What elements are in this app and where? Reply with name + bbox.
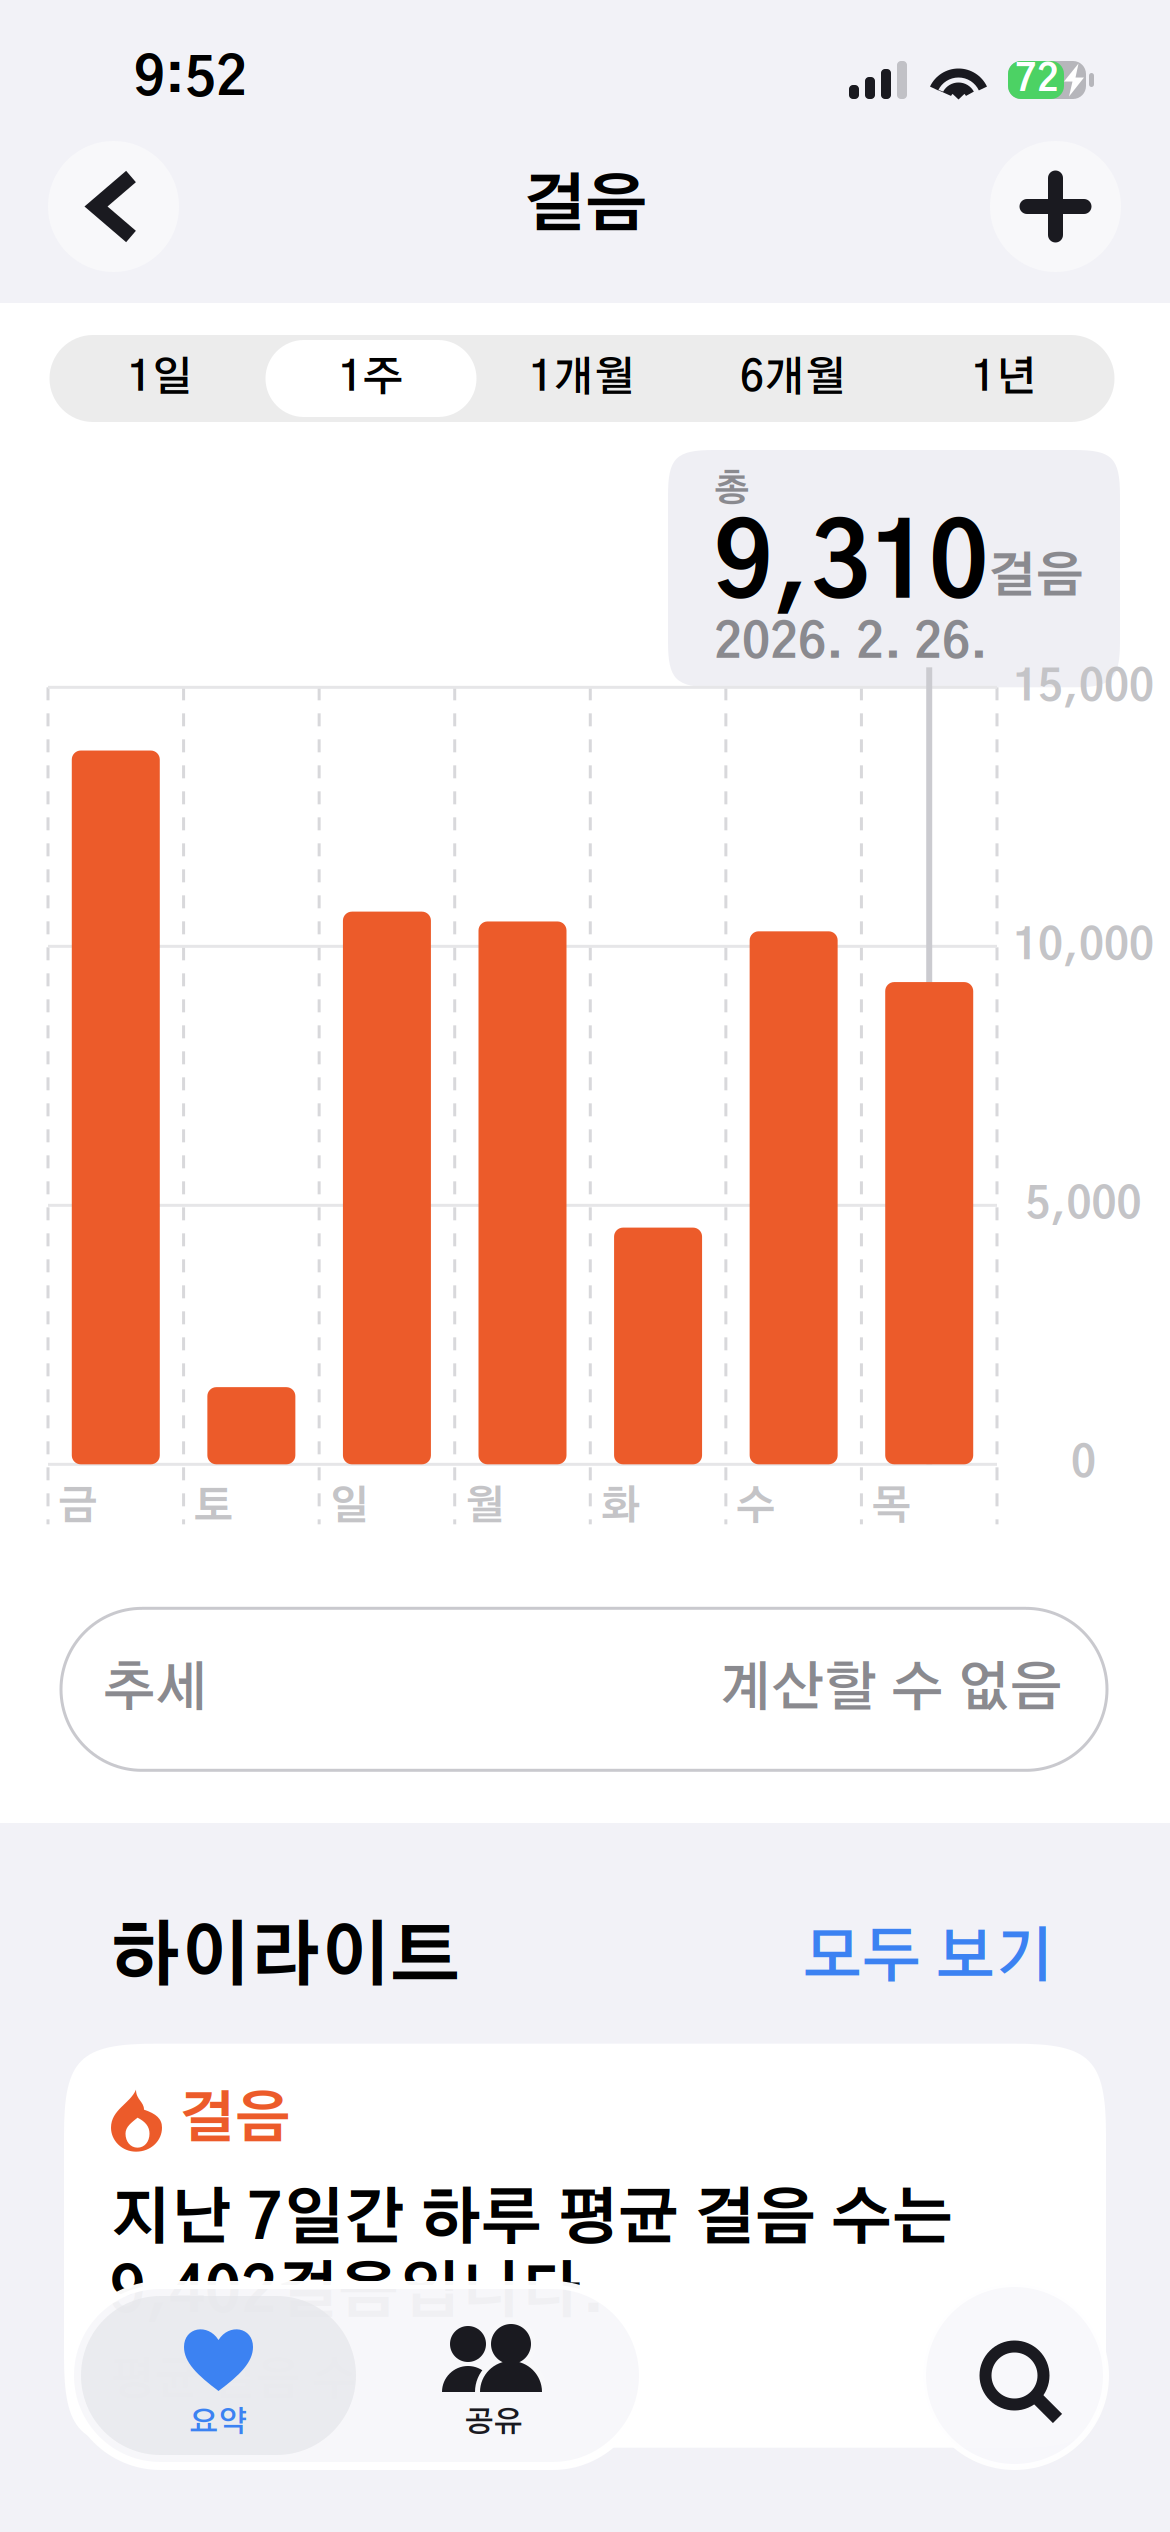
staticText: 걸음 <box>988 553 1084 601</box>
staticText: 10,000 <box>1013 925 1154 968</box>
staticText: 화 <box>600 1487 640 1527</box>
staticText: 하이라이트 <box>110 1923 460 1994</box>
staticText: 15,000 <box>1013 666 1154 709</box>
button[interactable]: 1일 <box>54 340 265 417</box>
staticText: 1년 <box>971 358 1036 399</box>
button[interactable]: 6개월 <box>687 340 898 417</box>
staticText: 걸음 <box>179 2093 291 2149</box>
staticText: 금 <box>58 1487 98 1527</box>
staticText: 9,310 <box>714 516 988 617</box>
staticText: 추세 <box>103 1663 209 1716</box>
staticText: 1주 <box>338 358 403 399</box>
staticText: 모두 보기 <box>803 1928 1054 1988</box>
staticText: 0 <box>1071 1443 1096 1485</box>
staticText: 월 <box>465 1487 505 1527</box>
staticText: 72 <box>1015 61 1059 99</box>
staticText: 9:52 <box>134 53 247 107</box>
staticText: 지난 7일간 하루 평균 걸음 수는 <box>110 2190 953 2251</box>
staticText: 계산할 수 없음 <box>719 1663 1063 1716</box>
staticText: 5,000 <box>1025 1184 1141 1227</box>
staticText: 1일 <box>127 358 192 399</box>
staticText: 요약 <box>189 2408 247 2437</box>
button[interactable]: Back <box>48 141 179 272</box>
staticText: 2026. 2. 26. <box>714 619 988 667</box>
staticText: 수 <box>736 1487 776 1527</box>
staticText: 1개월 <box>529 358 635 399</box>
staticText: 공유 <box>465 2408 523 2437</box>
staticText: 6개월 <box>740 358 846 399</box>
button[interactable]: Search <box>923 2284 1106 2467</box>
button[interactable]: 걸음 <box>64 2044 1106 2448</box>
staticText: 토 <box>194 1487 234 1527</box>
staticText: 평균 걸음 수 <box>110 2358 357 2404</box>
staticText: 총 <box>714 472 750 508</box>
button[interactable]: 추세 <box>61 1608 1107 1770</box>
staticText: 걸음 <box>523 175 647 238</box>
staticText: 9,402걸음입니다. <box>110 2263 605 2324</box>
staticText: 목 <box>871 1487 911 1527</box>
button[interactable]: 공유 <box>356 2296 632 2455</box>
button[interactable]: 모두 보기 <box>803 1928 1054 1988</box>
staticText: 일 <box>329 1487 369 1527</box>
button[interactable]: Add data <box>990 141 1121 272</box>
button[interactable]: 1개월 <box>476 340 687 417</box>
button[interactable]: 1주 <box>265 340 476 417</box>
button[interactable]: 요약 <box>81 2296 356 2455</box>
button[interactable]: 1년 <box>898 340 1109 417</box>
